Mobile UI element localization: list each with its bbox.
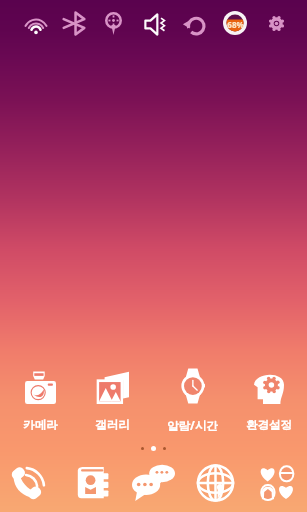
button[interactable]: Battery 68 percent — [216, 0, 255, 48]
button[interactable]: GPS location — [94, 0, 133, 48]
button[interactable]: All apps — [249, 456, 305, 512]
staticText: 환경설정 — [246, 418, 292, 432]
button[interactable]: Auto rotate — [175, 0, 214, 48]
button[interactable]: 알람/시간 — [156, 366, 228, 434]
staticText: 알람/시간 — [167, 418, 218, 434]
staticText: 갤러리 — [95, 418, 130, 432]
button[interactable]: Wi-Fi — [16, 0, 55, 48]
button[interactable]: Messages — [125, 456, 181, 512]
button[interactable]: Contacts — [66, 456, 122, 512]
staticText: 카메라 — [23, 418, 58, 432]
button[interactable]: 환경설정 — [233, 366, 305, 432]
button[interactable]: 카메라 — [4, 366, 76, 432]
staticText: 68% — [227, 19, 244, 30]
button[interactable]: Browser — [187, 456, 243, 512]
button[interactable]: Phone — [2, 456, 58, 512]
button[interactable]: Settings — [257, 0, 296, 48]
button[interactable]: Sound — [136, 0, 175, 48]
button[interactable]: 갤러리 — [76, 366, 148, 432]
button[interactable]: Bluetooth — [54, 0, 93, 48]
